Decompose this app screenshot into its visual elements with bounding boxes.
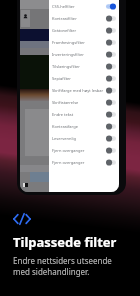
staticText: Sepiafilter	[52, 76, 71, 81]
button[interactable]: Inverteringsfilter	[49, 48, 119, 60]
staticText: Fjern overganger	[52, 160, 85, 165]
staticText: Kontrastfilter	[52, 16, 77, 21]
other: On	[106, 3, 116, 10]
button[interactable]: Endre tekst	[49, 108, 119, 120]
staticText: CSS-helfilter	[52, 4, 75, 9]
staticText: Endre tekst	[52, 112, 74, 117]
button[interactable]: CSS-helfilter	[49, 0, 119, 12]
staticText: Leservennlig	[52, 136, 76, 141]
button[interactable]: Gråtonefilter	[49, 24, 119, 36]
staticText: Kontrastfarge	[52, 124, 78, 129]
button[interactable]: Fjern overganger	[49, 156, 119, 168]
staticText: Skriftfarge med høyt lesbar	[52, 88, 104, 93]
button[interactable]: Sepiafilter	[49, 72, 119, 84]
staticText: Skriftstørrelse	[52, 100, 79, 105]
button[interactable]: Kontrastfarge	[49, 120, 119, 132]
button[interactable]: Fjern overganger	[49, 144, 119, 156]
staticText: Gråtonefilter	[52, 28, 77, 33]
staticText: Endre nettsiders utseende med sidehandli…	[13, 255, 128, 277]
other: Off	[106, 135, 116, 142]
other: Off	[106, 75, 116, 82]
other: Off	[106, 87, 116, 94]
button[interactable]: Kontrastfilter	[49, 12, 119, 24]
other: Off	[106, 63, 116, 70]
other: Off	[106, 123, 116, 130]
other: Off	[106, 39, 116, 46]
button[interactable]: Tilsløringsfilter	[49, 60, 119, 72]
other: Off	[106, 27, 116, 34]
other: Code	[13, 213, 31, 225]
other: Off	[106, 51, 116, 58]
other: Off	[106, 111, 116, 118]
staticText: Tilsløringsfilter	[52, 64, 80, 69]
other: Off	[106, 15, 116, 22]
button[interactable]: Skriftstørrelse	[49, 96, 119, 108]
staticText: Framhevingsfilter	[52, 40, 85, 45]
staticText: Fjern overganger	[52, 148, 85, 153]
staticText: FUTURE	[54, 30, 85, 41]
button[interactable]: Skriftfarge med høyt lesbar	[49, 84, 119, 96]
button[interactable]: Framhevingsfilter	[49, 36, 119, 48]
other: Off	[106, 147, 116, 154]
staticText: Tilpassede filter	[13, 233, 117, 251]
button[interactable]: Leservennlig	[49, 132, 119, 144]
other: Off	[106, 99, 116, 106]
staticText: Inverteringsfilter	[52, 52, 84, 57]
other: Off	[106, 159, 116, 166]
